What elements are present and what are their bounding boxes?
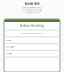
staticText: Second item (6, 46, 14, 48)
staticText: for layout of the gray copy that (22, 8, 41, 10)
staticText: Search Aid (24, 2, 39, 5)
staticText: First item (6, 39, 11, 41)
staticText: describes the purpose of this (22, 10, 42, 12)
staticText: particular screen (25, 12, 38, 14)
staticText: supporting sentence of body copy (20, 32, 44, 34)
staticText: Third item (6, 53, 12, 55)
staticText: sample caption text goes here (22, 6, 42, 8)
staticText: Section Heading (20, 24, 44, 27)
